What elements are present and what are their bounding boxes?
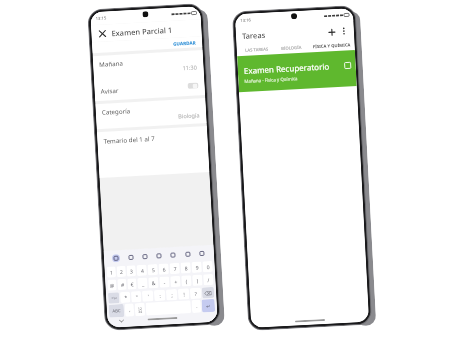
button[interactable]: Keyboard [112,254,120,262]
button[interactable]: =\< [108,292,119,304]
button[interactable]: GUARDAR [173,39,196,47]
staticText: 6 [162,265,166,273]
button[interactable]: Avisar [94,75,205,101]
button[interactable]: € [127,278,137,290]
staticText: 12 34 [138,306,142,314]
staticText: 5 [151,266,155,273]
button[interactable]: FÍSICA Y QUÍMICA [307,39,355,52]
staticText: 4 [141,267,144,274]
staticText: LAS TAREAS [245,47,269,54]
staticText: Examen Recuperatorio [243,60,330,76]
staticText: ' [147,292,149,300]
button[interactable]: ABC [109,304,124,318]
staticText: + [174,278,178,285]
staticText: Temario del 1 al 7 [103,134,156,145]
button[interactable]: 1 [106,266,116,278]
staticText: 8 [184,264,188,271]
staticText: Mañana [99,59,123,68]
staticText: 1 [110,268,113,276]
button[interactable]: ? [190,288,201,299]
staticText: Biología [178,111,200,120]
staticText: € [130,280,134,287]
staticText: 0 [206,263,210,270]
button[interactable]: Add [326,26,337,38]
staticText: 9 [195,264,199,271]
button[interactable]: LAS TAREAS [238,43,275,56]
button[interactable]: / [203,274,214,285]
button[interactable]: ⌫ [202,287,214,298]
button[interactable]: Temario del 1 al 7 [97,126,209,178]
staticText: / [207,276,210,283]
button[interactable]: @ [107,279,117,291]
button[interactable]: " [131,291,141,302]
button[interactable]: 7 [169,263,180,274]
button[interactable]: - [159,276,170,288]
button[interactable]: Settings [169,251,177,259]
button[interactable]: : [154,290,165,301]
staticText: : [159,292,161,299]
staticText: GUARDAR [173,39,196,47]
staticText: FÍSICA Y QUÍMICA [312,42,351,50]
button[interactable]: Examen Recuperatorio [237,50,357,92]
staticText: ⌫ [204,290,212,296]
button[interactable]: 6 [158,263,169,275]
button[interactable]: Clipboard [155,252,163,260]
button[interactable]: 9 [191,261,202,273]
button[interactable]: , [125,303,134,317]
staticText: 13:15 [95,15,107,22]
button[interactable]: 0 [202,261,213,272]
staticText: # [120,281,125,288]
button[interactable]: 2 [116,266,126,277]
staticText: ; [171,291,173,298]
button[interactable]: # [117,279,127,290]
staticText: @ [109,281,115,289]
staticText: Categoría [102,106,131,116]
button[interactable]: Voice [198,249,206,258]
staticText: & [151,279,156,286]
staticText: ( [185,277,188,284]
button[interactable]: . [191,300,201,313]
button[interactable]: Close [96,27,108,39]
staticText: ABC [112,308,121,315]
button[interactable]: ↵ [201,299,215,312]
staticText: _ [141,280,145,287]
staticText: 13:16 [240,17,251,24]
button[interactable]: 3 [126,265,136,277]
staticText: Mañana · Física y Química [244,75,298,84]
staticText: 3 [130,267,133,275]
button[interactable]: 4 [136,265,147,276]
button[interactable]: BIOLOGÍA [274,41,308,54]
button[interactable]: Sticker [127,253,135,262]
button[interactable]: _ [137,278,148,289]
button[interactable]: ) [192,274,203,286]
button[interactable]: More options [339,25,349,36]
staticText: Avisar [100,86,119,95]
button[interactable]: ( [181,275,192,287]
button[interactable]: + [170,276,181,287]
button[interactable]: ; [166,289,177,300]
button[interactable] [146,300,191,316]
button[interactable]: Mañana [93,50,204,81]
staticText: ) [196,277,199,284]
staticText: , [129,306,131,314]
staticText: BIOLOGÍA [281,45,302,52]
button[interactable]: 12 34 [135,303,145,316]
button[interactable]: GIF [141,252,149,261]
staticText: Examen Parcial 1 [111,25,173,38]
staticText: =\< [111,295,117,301]
staticText: * [124,294,127,301]
staticText: 11:30 [182,63,198,72]
button[interactable]: Theme [184,250,192,258]
button[interactable]: * [120,291,130,303]
button[interactable]: ' [142,290,153,302]
button[interactable]: 8 [180,262,191,274]
button[interactable]: Categoría [95,98,207,129]
button[interactable]: ! [178,288,189,300]
button[interactable]: & [148,277,159,288]
staticText: ↵ [206,303,211,309]
staticText: 2 [120,268,123,275]
staticText: ? [194,290,197,297]
staticText: - [163,278,166,286]
staticText: 7 [173,265,177,272]
button[interactable]: 5 [147,264,158,275]
